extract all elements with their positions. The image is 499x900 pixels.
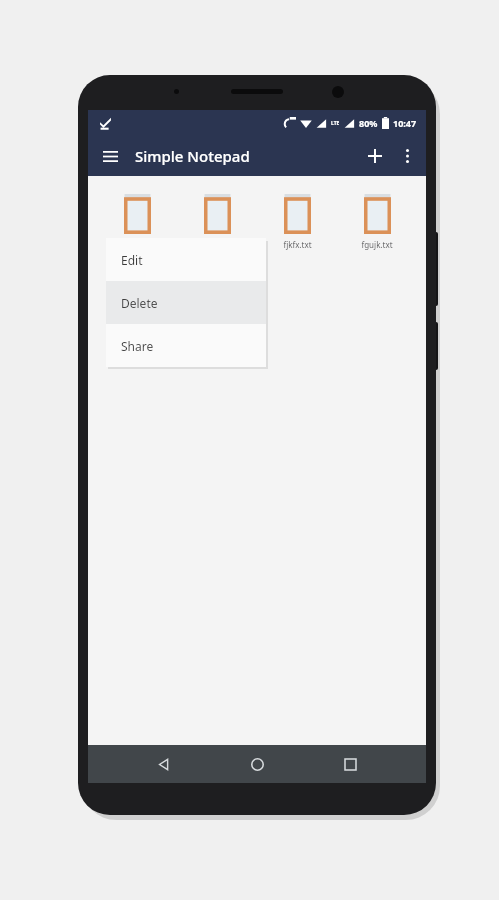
staticText: 80% — [359, 117, 378, 129]
button[interactable]: Home — [240, 747, 274, 781]
button[interactable] — [106, 194, 168, 234]
button[interactable]: fgujk.txt — [346, 194, 408, 250]
button[interactable]: Edit — [106, 238, 266, 281]
staticText: LTE — [331, 120, 340, 127]
button[interactable]: fjkfx.txt — [266, 194, 328, 250]
button[interactable]: Back — [147, 747, 181, 781]
staticText: fjkfx.txt — [283, 239, 312, 250]
button[interactable]: Add note — [358, 139, 392, 173]
staticText: fgujk.txt — [361, 239, 393, 250]
button[interactable]: Open navigation menu — [94, 140, 126, 172]
button[interactable]: Delete — [106, 281, 266, 324]
staticText: Share — [121, 338, 154, 354]
button[interactable]: Share — [106, 324, 266, 367]
staticText: 10:47 — [393, 117, 417, 129]
staticText: Simple Notepad — [135, 146, 250, 166]
staticText: Edit — [121, 252, 143, 268]
button[interactable]: More options — [392, 141, 422, 171]
staticText: Delete — [121, 295, 158, 311]
button[interactable] — [186, 194, 248, 234]
button[interactable]: Recent apps — [333, 747, 367, 781]
